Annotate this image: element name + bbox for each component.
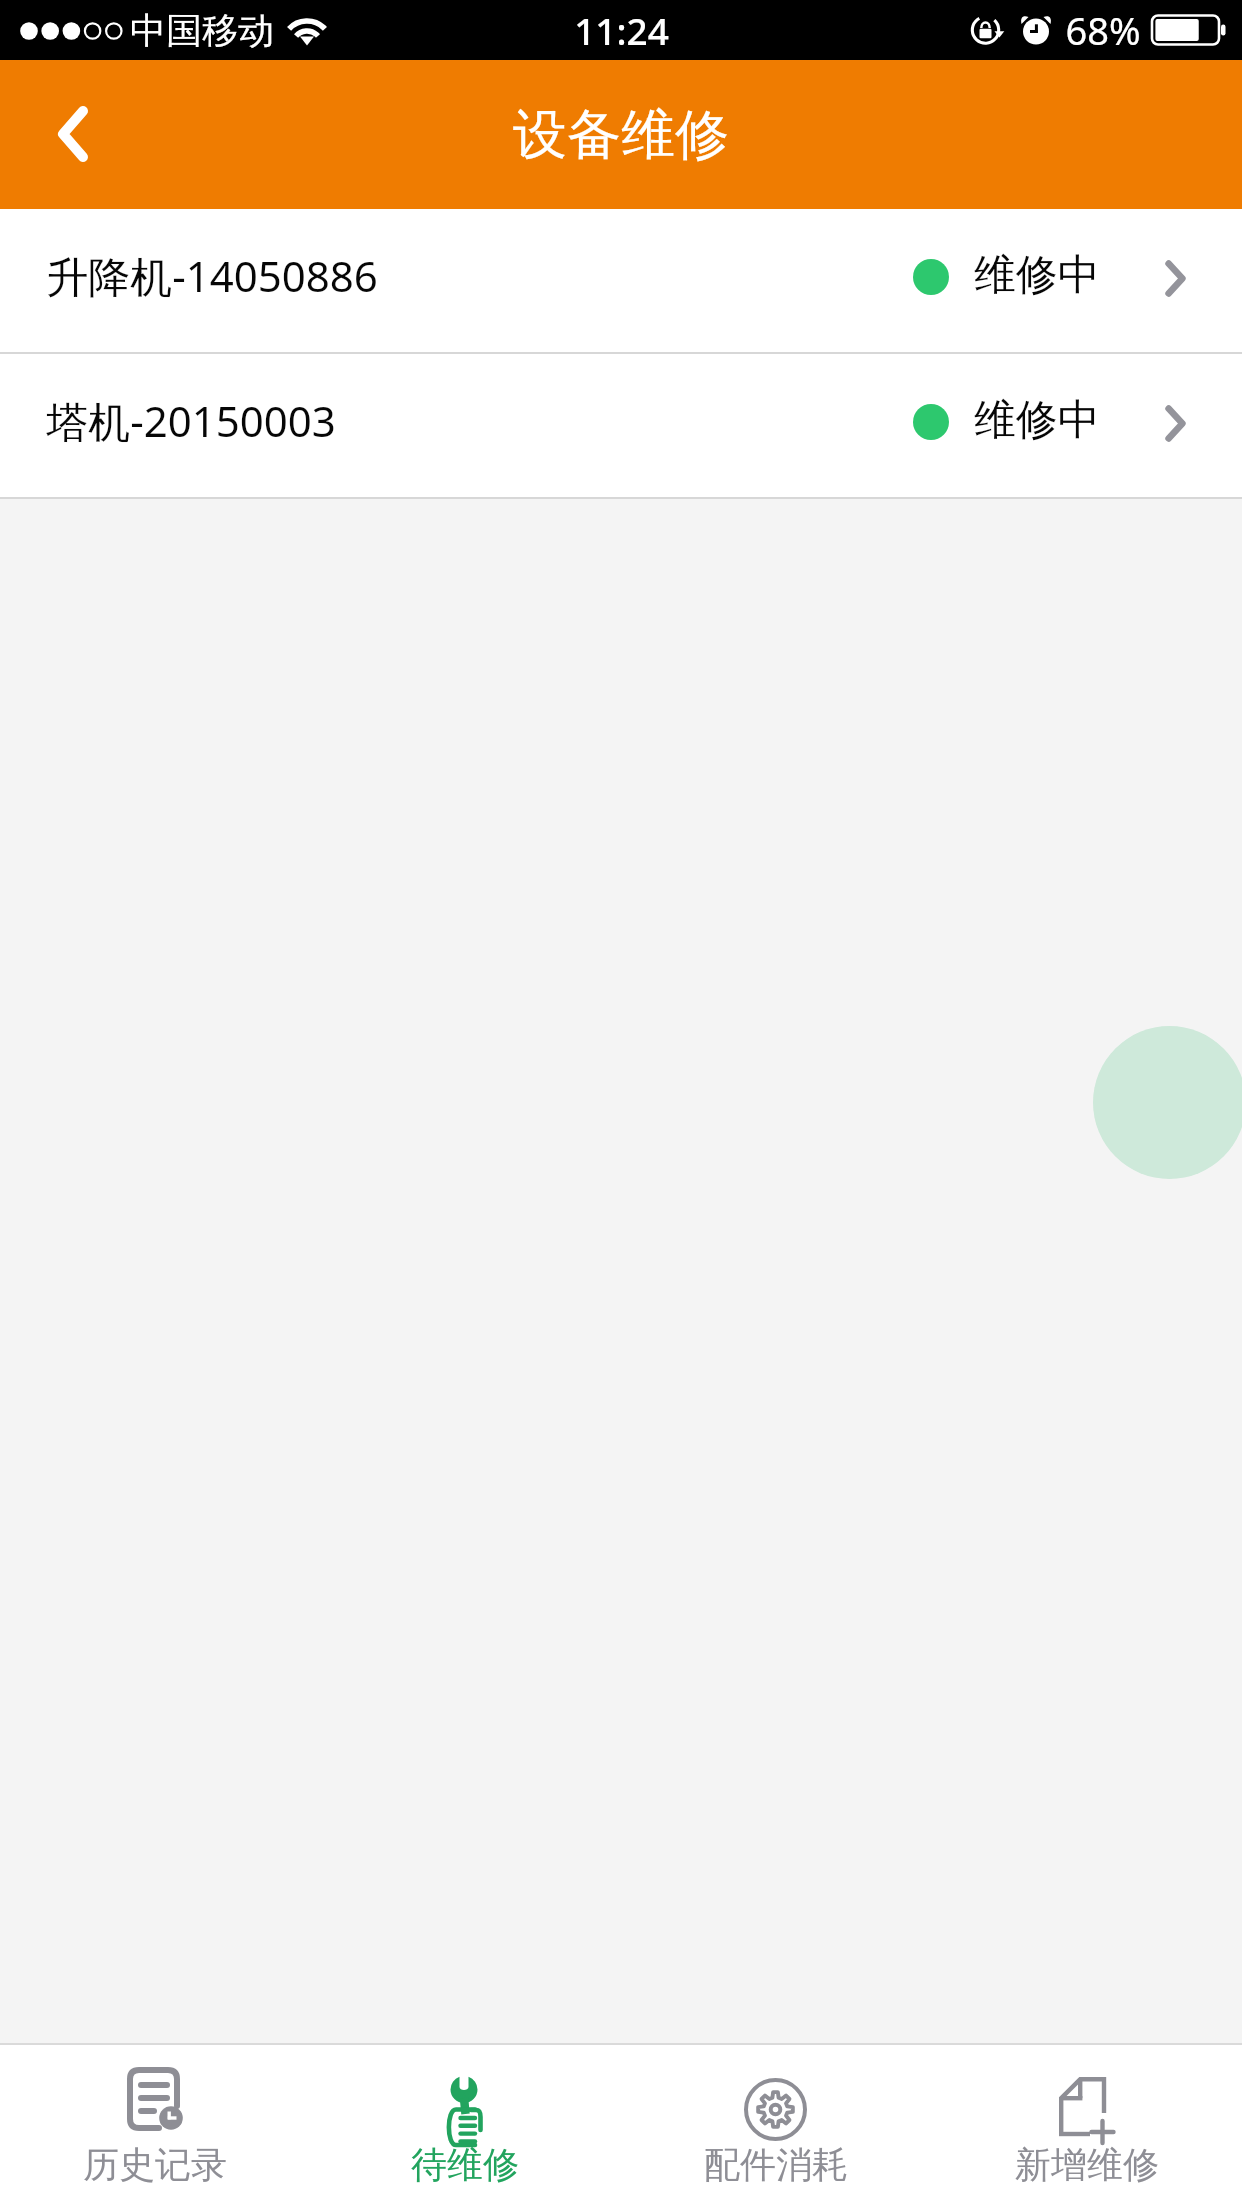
button[interactable]: 新增维修 (931, 2045, 1242, 2208)
button[interactable]: Back (0, 60, 145, 209)
staticText: 11:24 (574, 5, 669, 55)
staticText: 维修中 (974, 394, 1100, 447)
button[interactable]: 配件消耗 (620, 2045, 931, 2208)
staticText: 塔机-20150003 (46, 392, 336, 449)
staticText: 维修中 (974, 249, 1100, 302)
staticText: 中国移动 (130, 8, 274, 53)
staticText: 68% (1065, 4, 1141, 56)
button[interactable]: 升降机-14050886 (0, 209, 1242, 354)
staticText: 配件消耗 (704, 2142, 848, 2187)
button[interactable]: 待维修 (310, 2045, 620, 2208)
staticText: 设备维修 (513, 101, 729, 169)
button[interactable]: 塔机-20150003 (0, 354, 1242, 499)
button[interactable]: 历史记录 (0, 2045, 310, 2208)
staticText: 待维修 (411, 2142, 519, 2187)
staticText: 历史记录 (83, 2142, 227, 2187)
staticText: 升降机-14050886 (46, 247, 378, 304)
staticText: 新增维修 (1015, 2142, 1159, 2187)
